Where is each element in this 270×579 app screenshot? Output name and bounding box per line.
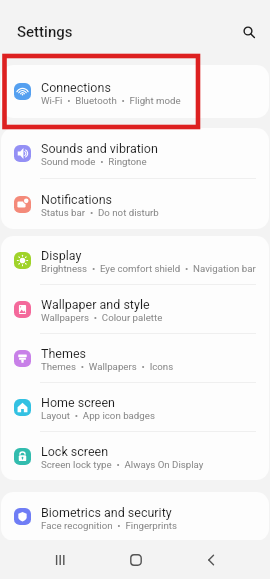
staticText: Biometrics and security xyxy=(41,505,172,520)
button[interactable]: Sounds and vibration xyxy=(1,128,269,178)
staticText: Wallpapers • Colour palette xyxy=(41,312,163,323)
staticText: Wi-Fi • Bluetooth • Flight mode xyxy=(41,95,181,106)
button[interactable]: Themes xyxy=(1,334,269,382)
button[interactable]: Notifications xyxy=(1,179,269,229)
staticText: Sound mode • Ringtone xyxy=(41,156,147,167)
button[interactable]: Wallpaper and style xyxy=(1,285,269,333)
staticText: Wallpaper and style xyxy=(41,297,150,312)
staticText: Face recognition • Fingerprints xyxy=(41,520,177,531)
button[interactable]: Home screen xyxy=(1,383,269,431)
staticText: Lock screen xyxy=(41,444,109,459)
button[interactable]: Search xyxy=(234,17,264,47)
button[interactable]: Display xyxy=(1,236,269,284)
staticText: Home screen xyxy=(41,395,116,410)
button[interactable]: Back xyxy=(191,540,232,579)
staticText: Themes xyxy=(41,346,87,361)
staticText: Status bar • Do not disturb xyxy=(41,207,159,218)
staticText: Screen lock type • Always On Display xyxy=(41,459,204,470)
button[interactable]: Lock screen xyxy=(1,432,269,480)
staticText: Connections xyxy=(41,80,111,95)
button[interactable]: Biometrics and security xyxy=(1,492,269,541)
button[interactable]: Recent apps xyxy=(40,540,81,579)
staticText: Themes • Wallpapers • Icons xyxy=(41,361,174,372)
staticText: Layout • App icon badges xyxy=(41,410,155,421)
staticText: Notifications xyxy=(41,192,113,207)
staticText: Settings xyxy=(17,23,73,41)
button[interactable]: Home xyxy=(115,540,156,579)
button[interactable]: Connections xyxy=(1,65,269,118)
staticText: Brightness • Eye comfort shield • Naviga… xyxy=(41,263,256,274)
staticText: Display xyxy=(41,248,82,263)
staticText: Sounds and vibration xyxy=(41,141,158,156)
